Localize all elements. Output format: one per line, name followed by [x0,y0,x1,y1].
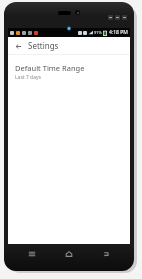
button[interactable]: Default Time Range [8,60,130,84]
button[interactable]: Back [12,40,24,52]
staticText: Settings [28,40,59,51]
button[interactable]: Back [93,245,119,263]
staticText: Last 7 days [15,74,41,81]
button[interactable]: Home [56,245,82,263]
button[interactable]: Recent apps [19,245,45,263]
staticText: 91% [94,30,102,35]
staticText: 4:18 PM [109,29,128,36]
staticText: Default Time Range [15,63,85,73]
